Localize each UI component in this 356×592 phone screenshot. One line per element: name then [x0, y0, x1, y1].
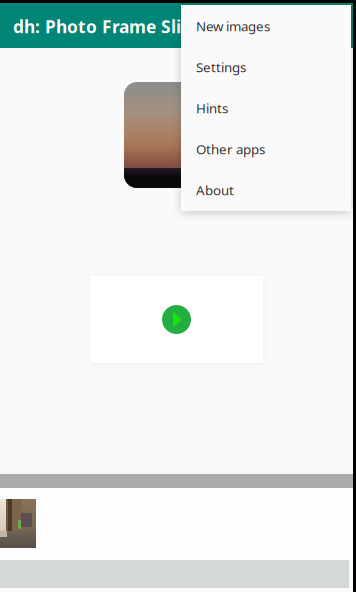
button[interactable]: Settings [181, 46, 351, 87]
staticText: dh: Photo Frame Slide [13, 15, 202, 38]
staticText: Hints [196, 99, 228, 117]
button[interactable]: New images [181, 5, 351, 46]
staticText: Settings [196, 58, 246, 76]
button[interactable] [90, 276, 263, 363]
staticText: Other apps [196, 140, 265, 158]
staticText: New images [196, 17, 270, 35]
button[interactable]: Other apps [181, 128, 351, 169]
button[interactable]: Hints [181, 87, 351, 128]
staticText: About [196, 181, 234, 199]
button[interactable]: About [181, 169, 351, 210]
